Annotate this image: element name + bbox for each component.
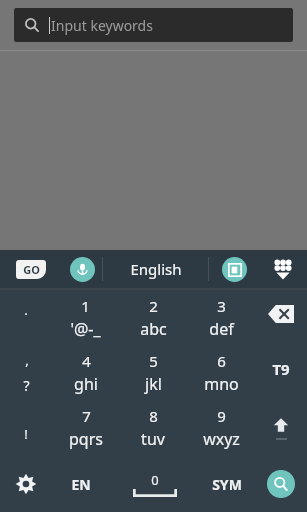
staticText: '@-_: [70, 318, 101, 340]
button[interactable]: 2: [119, 290, 187, 345]
staticText: pqrs: [69, 428, 103, 450]
button[interactable]: Space: [110, 456, 199, 512]
staticText: 9: [217, 406, 226, 426]
button[interactable]: .: [0, 290, 52, 345]
staticText: GO: [23, 262, 40, 277]
staticText: 7: [82, 406, 91, 426]
staticText: jkl: [145, 373, 162, 395]
button[interactable]: ,: [0, 345, 52, 400]
staticText: .: [24, 301, 28, 319]
staticText: EN: [71, 475, 91, 494]
staticText: Input keywords: [51, 16, 153, 35]
button[interactable]: Shift: [255, 400, 307, 456]
staticText: T9: [272, 359, 290, 379]
button[interactable]: English: [103, 250, 208, 288]
button[interactable]: !: [0, 400, 52, 456]
staticText: ?: [23, 376, 30, 395]
button[interactable]: T9 mode: [255, 345, 307, 400]
button[interactable]: 4: [52, 345, 119, 400]
staticText: 6: [217, 351, 226, 371]
staticText: 1: [81, 296, 90, 316]
staticText: mno: [204, 373, 239, 395]
button[interactable]: 9: [187, 400, 255, 456]
other: Search: [24, 17, 40, 33]
button[interactable]: Search: [14, 8, 293, 42]
button[interactable]: 1: [52, 290, 119, 345]
staticText: SYM: [212, 475, 242, 494]
button[interactable]: 6: [187, 345, 255, 400]
staticText: ghi: [74, 373, 98, 395]
button[interactable]: Backspace: [255, 290, 307, 345]
button[interactable]: Resize keyboard: [209, 250, 259, 288]
button[interactable]: 8: [119, 400, 187, 456]
staticText: wxyz: [203, 428, 240, 450]
staticText: 2: [149, 296, 158, 316]
staticText: 8: [149, 406, 158, 426]
staticText: ,: [25, 351, 29, 369]
button[interactable]: 7: [52, 400, 119, 456]
staticText: def: [209, 318, 234, 340]
button[interactable]: More options: [259, 250, 307, 288]
staticText: 3: [217, 296, 226, 316]
button[interactable]: Voice input: [62, 250, 102, 288]
staticText: 4: [82, 351, 91, 371]
button[interactable]: GO: [0, 250, 62, 288]
staticText: English: [130, 259, 182, 279]
staticText: !: [24, 425, 28, 443]
staticText: tuv: [141, 428, 165, 450]
button[interactable]: Settings: [0, 456, 52, 512]
staticText: 5: [149, 351, 158, 371]
button[interactable]: SYM: [199, 456, 255, 512]
button[interactable]: 3: [187, 290, 255, 345]
staticText: abc: [140, 318, 167, 340]
button[interactable]: 5: [119, 345, 187, 400]
button[interactable]: EN: [52, 456, 110, 512]
button[interactable]: Search: [255, 456, 307, 512]
staticText: 0: [151, 471, 159, 489]
